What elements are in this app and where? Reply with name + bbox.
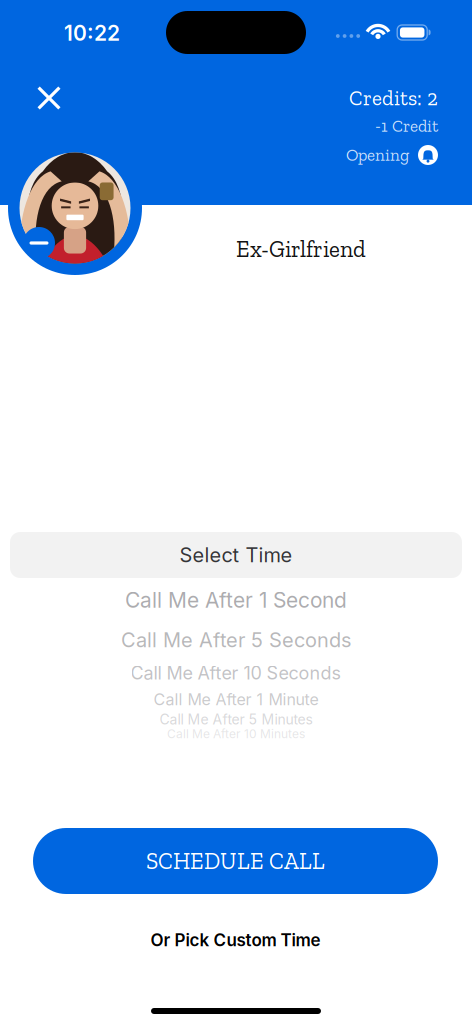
staticText: Ex-Girlfriend: [236, 235, 366, 263]
staticText: Call Me After 10 Minutes: [167, 727, 305, 741]
staticText: SCHEDULE CALL: [146, 847, 325, 875]
staticText: Select Time: [179, 543, 292, 567]
button[interactable]: Close: [27, 76, 71, 120]
staticText: Call Me After 5 Minutes: [159, 711, 312, 728]
button[interactable]: Or Pick Custom Time: [33, 918, 438, 962]
staticText: Credits: 2: [349, 85, 438, 111]
staticText: Opening: [346, 145, 409, 165]
staticText: Call Me After 1 Minute: [153, 690, 318, 709]
staticText: Call Me After 10 Seconds: [130, 662, 341, 684]
staticText: Call Me After 1 Second: [125, 587, 347, 613]
staticText: Or Pick Custom Time: [150, 930, 320, 950]
staticText: -1 Credit: [375, 116, 438, 136]
staticText: Call Me After 5 Seconds: [121, 628, 351, 652]
staticText: 10:22: [64, 20, 120, 46]
button[interactable]: SCHEDULE CALL: [33, 828, 438, 894]
button[interactable]: Opening: [346, 138, 438, 172]
